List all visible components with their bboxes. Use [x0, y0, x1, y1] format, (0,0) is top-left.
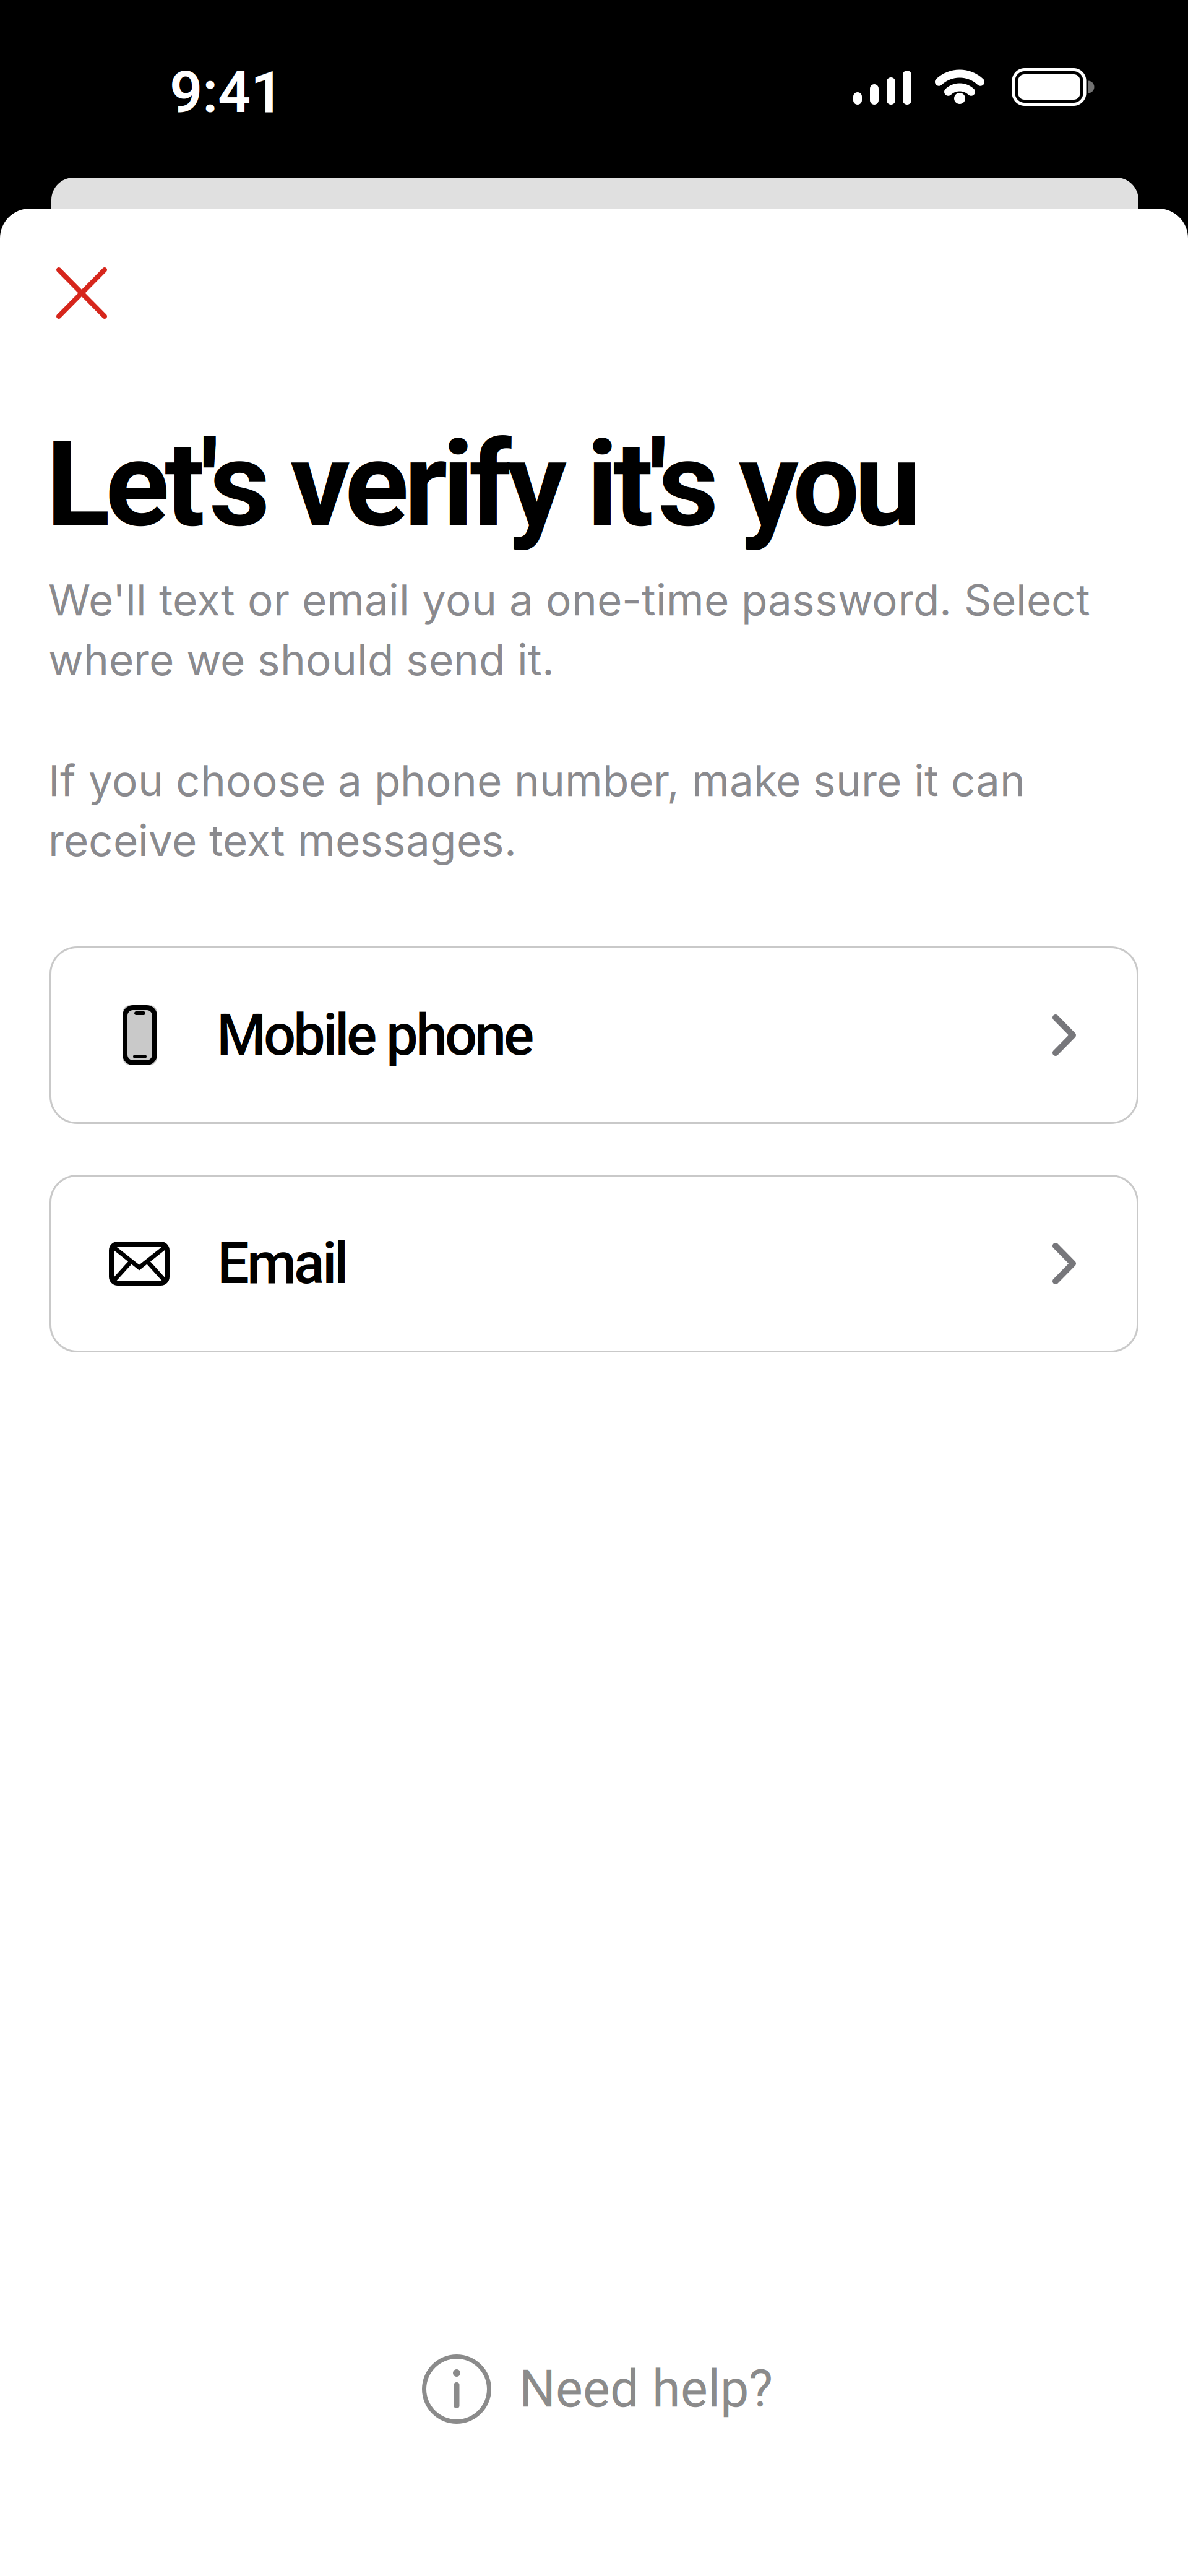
- staticText: We'll text or email you a one-time passw…: [48, 574, 1090, 686]
- staticText: Mobile phone: [217, 1002, 534, 1069]
- button[interactable]: Email: [49, 1175, 1138, 1352]
- staticText: If you choose a phone number, make sure …: [48, 754, 1025, 866]
- staticText: Let's verify it's you: [46, 415, 921, 554]
- button[interactable]: Need help?: [422, 2354, 773, 2424]
- staticText: 9:41: [170, 59, 283, 127]
- button[interactable]: Mobile phone: [49, 946, 1138, 1124]
- button[interactable]: Close: [44, 255, 119, 331]
- staticText: Need help?: [519, 2359, 773, 2419]
- staticText: Email: [217, 1230, 348, 1297]
